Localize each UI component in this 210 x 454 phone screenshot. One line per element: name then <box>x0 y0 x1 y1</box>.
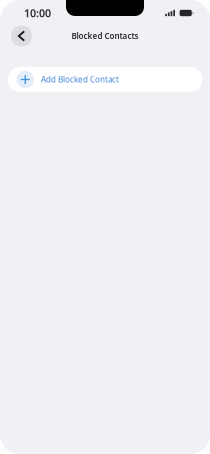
staticText: Blocked Contacts <box>71 31 138 41</box>
staticText: 10:00 <box>24 6 51 20</box>
button[interactable]: Back <box>11 25 32 46</box>
button[interactable]: Add Blocked Contact <box>7 67 202 92</box>
staticText: Add Blocked Contact <box>41 74 119 85</box>
